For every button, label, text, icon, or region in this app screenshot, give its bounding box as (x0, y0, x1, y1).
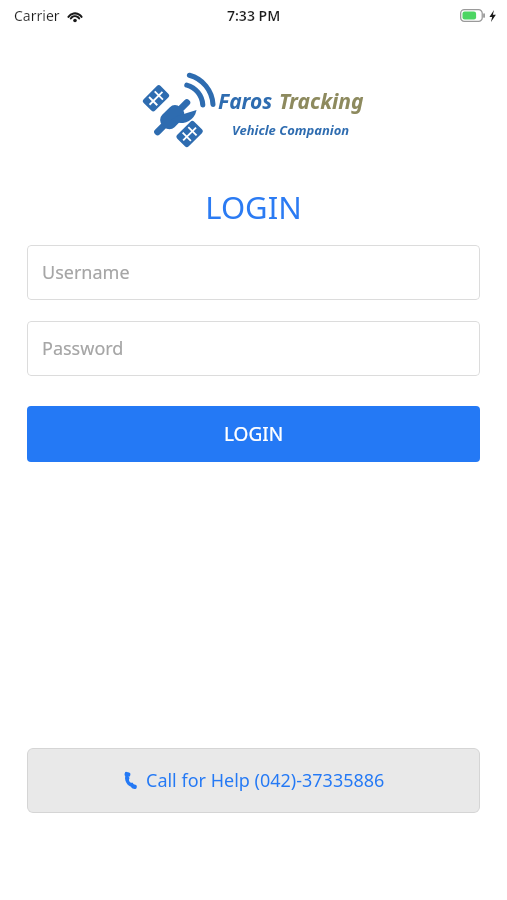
staticText: LOGIN (0, 186, 507, 228)
staticText: Username (42, 260, 130, 285)
button[interactable]: LOGIN (27, 406, 480, 462)
staticText: Faros (218, 87, 273, 116)
staticText: 7:33 PM (227, 6, 281, 25)
staticText: Carrier (14, 6, 60, 25)
other: Wi-Fi (67, 10, 83, 22)
other: Battery charging (460, 9, 486, 22)
button[interactable]: Call for Help (042)-37335886 (27, 748, 480, 813)
staticText: Call for Help (042)-37335886 (146, 768, 385, 793)
staticText: Vehicle Companion (232, 121, 350, 139)
other: Faros Tracking logo (144, 78, 204, 148)
button[interactable]: Password (27, 321, 480, 376)
button[interactable]: Username (27, 245, 480, 300)
staticText: LOGIN (224, 421, 284, 447)
staticText: Password (42, 336, 124, 361)
staticText: Tracking (279, 87, 364, 116)
